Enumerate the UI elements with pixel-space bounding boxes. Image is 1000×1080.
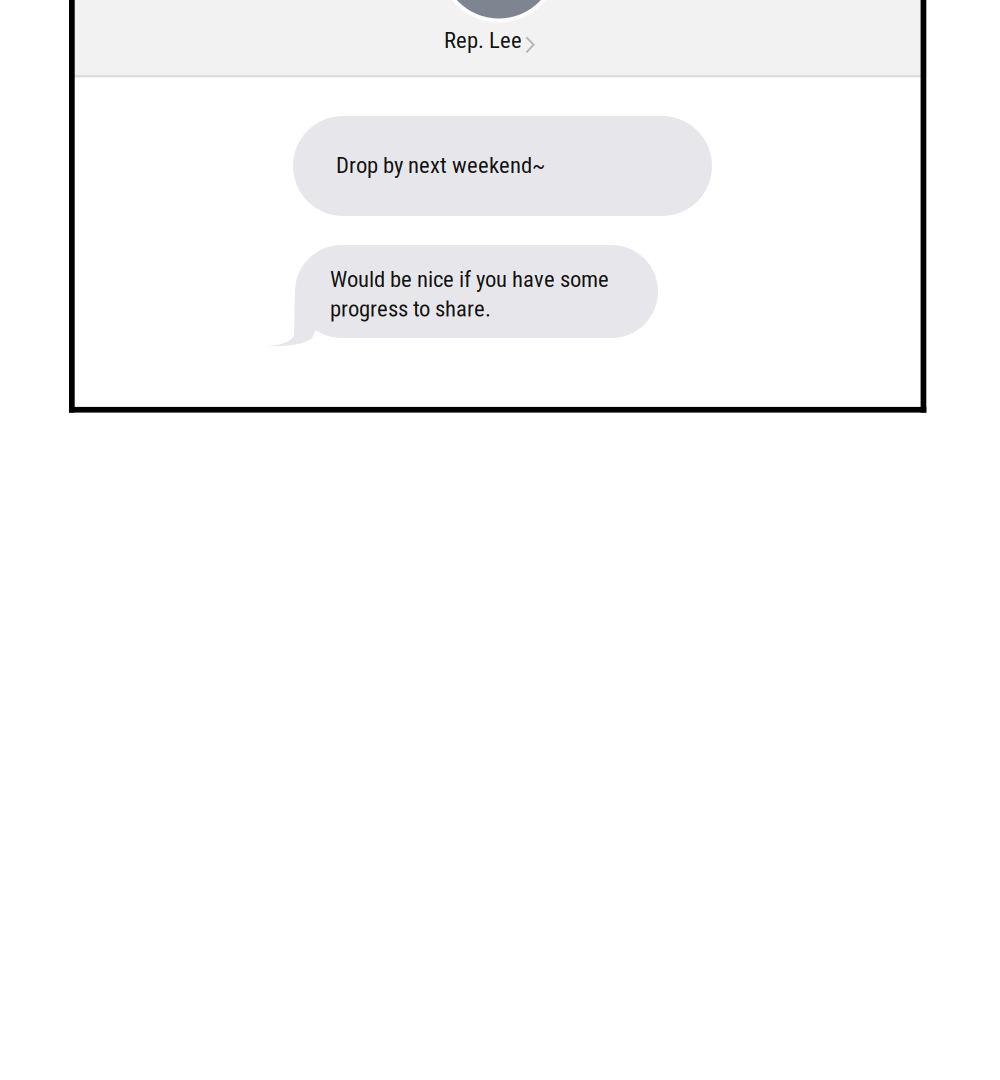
staticText: Would be nice if you have some (330, 266, 609, 293)
button[interactable]: Would be nice if you have some (295, 245, 658, 338)
button[interactable]: Rep. Lee (444, 27, 535, 54)
staticText: Rep. Lee (444, 27, 522, 54)
button[interactable]: Rep. Lee profile photo (438, 0, 560, 22)
button[interactable]: Drop by next weekend~ (293, 116, 712, 216)
staticText: progress to share. (330, 296, 491, 322)
staticText: Drop by next weekend~ (336, 152, 545, 179)
